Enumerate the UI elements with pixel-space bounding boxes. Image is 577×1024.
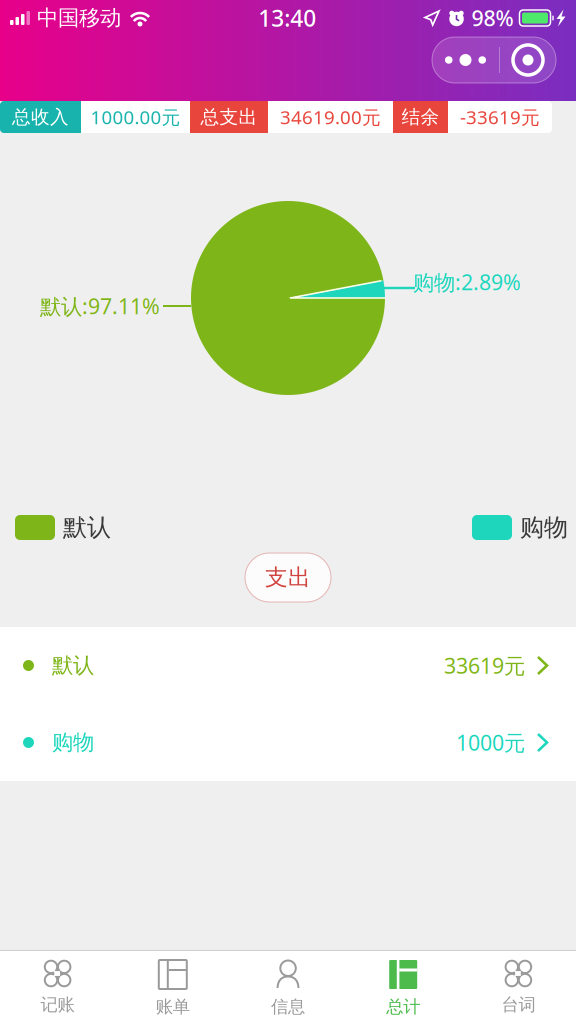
- staticText: 支出: [265, 564, 311, 591]
- staticText: 33619元: [444, 651, 525, 680]
- staticText: 默认: [52, 652, 94, 679]
- staticText: 购物: [520, 513, 568, 542]
- staticText: 总计: [386, 996, 420, 1017]
- staticText: 1000元: [456, 728, 525, 757]
- button[interactable]: Close: [500, 37, 556, 83]
- staticText: 总支出: [200, 105, 257, 128]
- staticText: 13:40: [258, 3, 316, 33]
- staticText: 34619.00元: [280, 105, 381, 129]
- staticText: 默认:97.11%: [40, 292, 160, 320]
- staticText: 结余: [401, 105, 439, 128]
- staticText: -33619元: [460, 105, 540, 129]
- staticText: 台词: [501, 994, 535, 1015]
- staticText: 信息: [271, 996, 305, 1017]
- staticText: 中国移动: [37, 5, 121, 31]
- staticText: 购物: [52, 729, 94, 756]
- staticText: 默认: [63, 513, 111, 542]
- staticText: 98%: [471, 4, 513, 32]
- button[interactable]: 默认: [0, 627, 576, 704]
- button[interactable]: 信息: [230, 950, 346, 1024]
- button[interactable]: 支出: [245, 553, 331, 602]
- button[interactable]: 台词: [461, 950, 576, 1024]
- button[interactable]: More: [432, 37, 499, 83]
- staticText: 总收入: [12, 105, 69, 128]
- button[interactable]: 总计: [346, 950, 461, 1024]
- button[interactable]: 账单: [115, 950, 230, 1024]
- button[interactable]: 购物: [0, 704, 576, 781]
- staticText: 记账: [41, 994, 75, 1015]
- staticText: 账单: [156, 996, 190, 1017]
- button[interactable]: 记账: [0, 950, 115, 1024]
- staticText: 购物:2.89%: [413, 268, 521, 296]
- staticText: 1000.00元: [90, 105, 180, 129]
